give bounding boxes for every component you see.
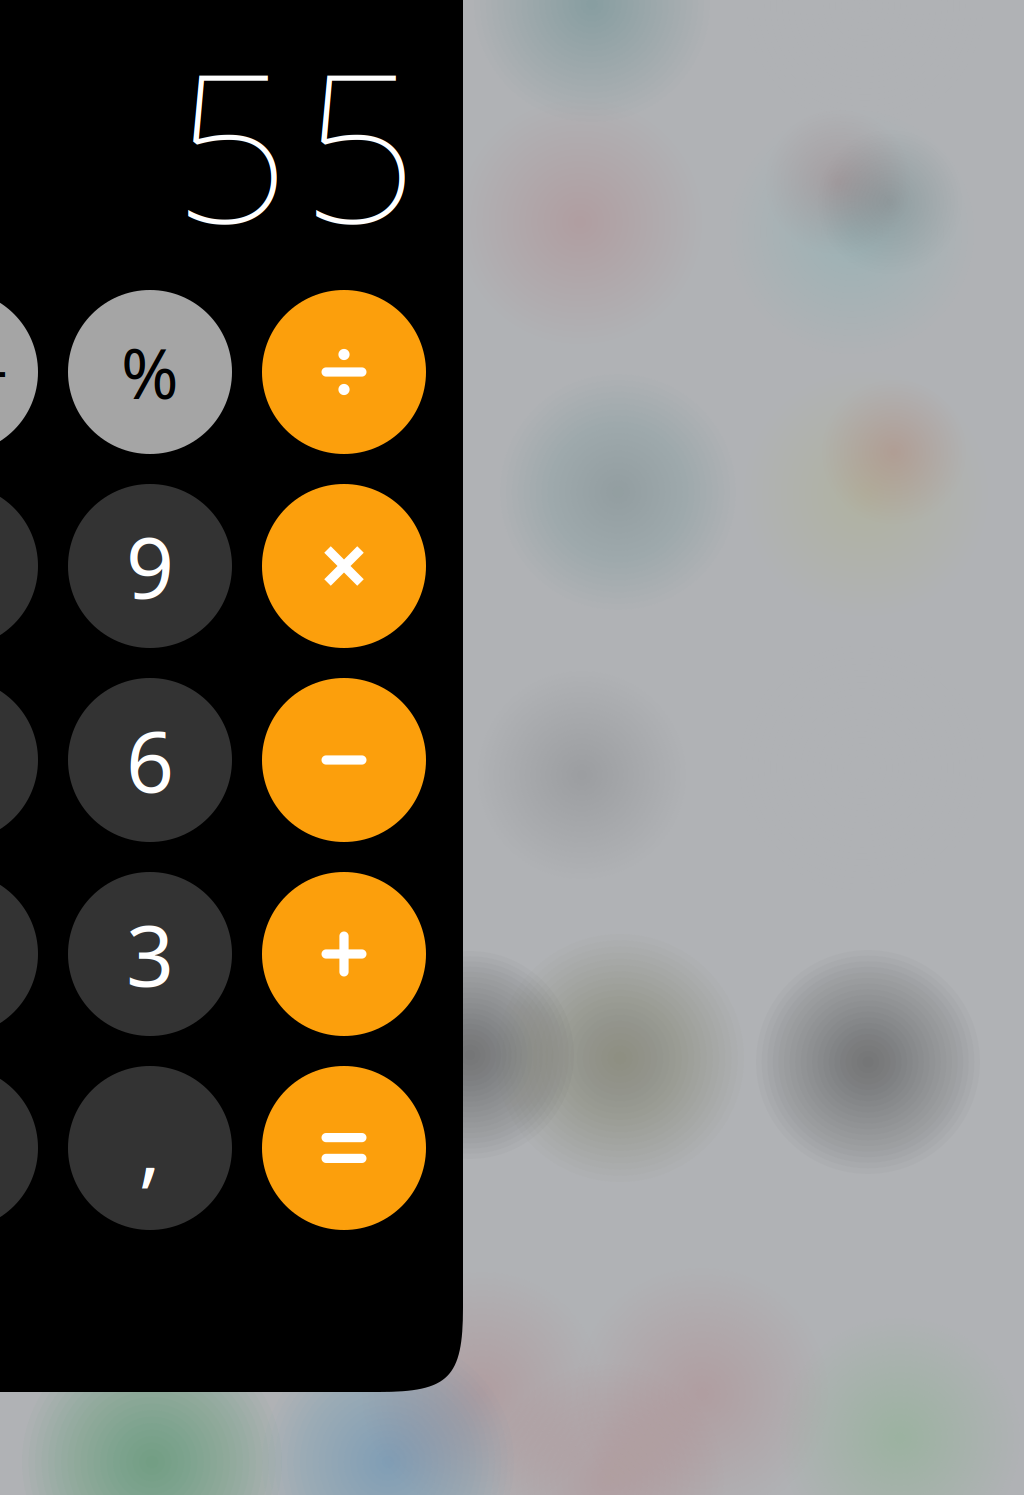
staticText: 3	[126, 898, 174, 1010]
staticText: 9	[126, 510, 174, 622]
button[interactable]: 9	[68, 484, 232, 648]
button[interactable]: 8	[0, 484, 38, 648]
button[interactable]: 2	[0, 872, 38, 1036]
button[interactable]: Minus	[262, 678, 426, 842]
button[interactable]: 0	[0, 1066, 38, 1230]
staticText: 55	[173, 7, 418, 279]
button[interactable]: Equals	[262, 1066, 426, 1230]
staticText: ,	[138, 1089, 161, 1201]
button[interactable]: 5	[0, 678, 38, 842]
staticText: 6	[126, 704, 174, 816]
button[interactable]: 6	[68, 678, 232, 842]
button[interactable]: Plus	[262, 872, 426, 1036]
staticText: +/−	[0, 326, 9, 418]
button[interactable]: Multiply	[262, 484, 426, 648]
button[interactable]: ,	[68, 1066, 232, 1230]
button[interactable]: %	[68, 290, 232, 454]
staticText: %	[121, 326, 179, 418]
button[interactable]: Divide	[262, 290, 426, 454]
button[interactable]: 3	[68, 872, 232, 1036]
button[interactable]: +/−	[0, 290, 38, 454]
